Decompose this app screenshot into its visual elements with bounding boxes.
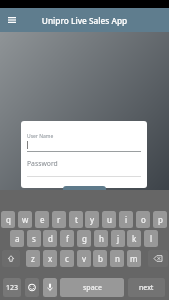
button[interactable]: y <box>85 211 99 228</box>
button[interactable]: 123 <box>3 278 21 297</box>
button[interactable]: Emoji <box>25 278 39 297</box>
button[interactable]: Open navigation menu <box>0 8 24 32</box>
staticText: w <box>22 214 29 225</box>
button[interactable]: Voice input <box>43 278 57 297</box>
staticText: i <box>125 214 128 225</box>
staticText: y <box>90 214 95 225</box>
staticText: x <box>48 253 53 264</box>
staticText: r <box>57 214 61 225</box>
button[interactable]: i <box>119 211 133 228</box>
staticText: h <box>99 233 104 244</box>
staticText: e <box>40 214 45 225</box>
button[interactable]: z <box>26 250 40 267</box>
button[interactable]: e <box>35 211 49 228</box>
button[interactable]: m <box>127 250 141 267</box>
staticText: t <box>75 214 78 225</box>
staticText: d <box>48 233 53 244</box>
button[interactable]: Backspace <box>148 250 168 267</box>
button[interactable]: c <box>60 250 74 267</box>
button[interactable]: space <box>60 278 124 297</box>
button[interactable]: k <box>127 230 141 247</box>
button[interactable]: l <box>144 230 158 247</box>
staticText: u <box>107 214 112 225</box>
button[interactable]: b <box>93 250 107 267</box>
staticText: next <box>139 283 154 293</box>
staticText: o <box>141 214 146 225</box>
button[interactable]: t <box>69 211 83 228</box>
staticText: j <box>117 233 120 244</box>
staticText: m <box>130 253 138 264</box>
button[interactable]: v <box>77 250 91 267</box>
button[interactable]: o <box>136 211 150 228</box>
button[interactable]: h <box>94 230 108 247</box>
staticText: User Name <box>27 133 54 140</box>
button[interactable]: n <box>110 250 124 267</box>
button[interactable]: x <box>43 250 57 267</box>
staticText: 123 <box>6 283 19 293</box>
staticText: v <box>82 253 87 264</box>
staticText: c <box>65 253 69 264</box>
button[interactable]: p <box>153 211 167 228</box>
button[interactable]: j <box>111 230 125 247</box>
staticText: b <box>98 253 103 264</box>
staticText: k <box>132 233 137 244</box>
button[interactable]: r <box>52 211 66 228</box>
button[interactable]: Shift <box>2 250 20 267</box>
staticText: Unipro Live Sales App <box>12 15 157 26</box>
button[interactable]: f <box>60 230 74 247</box>
staticText: f <box>66 233 69 244</box>
button[interactable]: next <box>128 278 165 297</box>
button[interactable]: u <box>102 211 116 228</box>
button[interactable]: g <box>77 230 91 247</box>
staticText: s <box>32 233 36 244</box>
button[interactable]: s <box>27 230 41 247</box>
staticText: Password <box>27 159 58 168</box>
staticText: l <box>150 233 153 244</box>
staticText: a <box>15 233 20 244</box>
button[interactable]: w <box>18 211 32 228</box>
button[interactable]: q <box>1 211 15 228</box>
staticText: q <box>6 214 11 225</box>
button[interactable]: d <box>43 230 57 247</box>
button[interactable]: a <box>10 230 24 247</box>
staticText: p <box>158 214 163 225</box>
staticText: z <box>31 253 35 264</box>
staticText: space <box>83 283 102 293</box>
staticText: n <box>115 253 120 264</box>
button[interactable]: Login <box>63 186 106 200</box>
staticText: g <box>82 233 87 244</box>
